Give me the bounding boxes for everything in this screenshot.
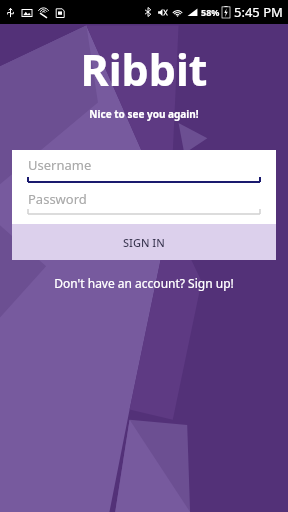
staticText: Username xyxy=(28,156,92,174)
staticText: 5:45 PM xyxy=(234,3,283,21)
staticText: Ribbit xyxy=(0,40,288,99)
staticText: Nice to see you again! xyxy=(0,107,288,121)
button[interactable]: Password xyxy=(12,184,276,216)
staticText: Don't have an account? Sign up! xyxy=(54,275,234,291)
button[interactable]: Username xyxy=(12,150,276,184)
button[interactable]: SIGN IN xyxy=(12,224,276,260)
button[interactable]: Don't have an account? Sign up! xyxy=(0,272,288,294)
staticText: 58% xyxy=(201,6,220,18)
staticText: SIGN IN xyxy=(123,235,165,250)
staticText: Password xyxy=(28,190,87,208)
